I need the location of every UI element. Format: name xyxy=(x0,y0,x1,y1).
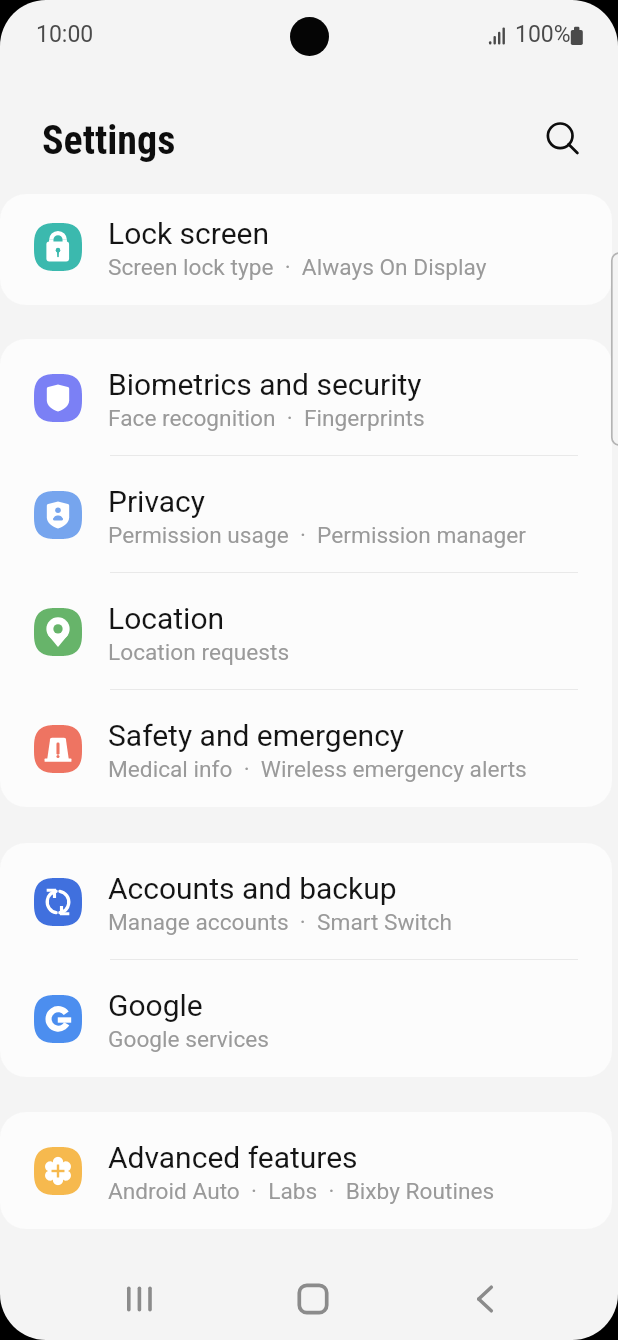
staticText: 10:00 xyxy=(36,21,94,48)
staticText: Manage accounts · Smart Switch xyxy=(108,909,452,936)
button[interactable]: Accounts and backup xyxy=(0,843,612,960)
staticText: Accounts and backup xyxy=(108,871,397,906)
button[interactable]: Google xyxy=(0,960,612,1077)
staticText: Privacy xyxy=(108,484,205,519)
button[interactable]: Biometrics and security xyxy=(0,339,612,456)
staticText: Lock screen xyxy=(108,216,270,251)
staticText: Face recognition · Fingerprints xyxy=(108,405,425,432)
button[interactable]: Safety and emergency xyxy=(0,690,612,807)
staticText: Advanced features xyxy=(108,1140,358,1175)
staticText: Google services xyxy=(108,1026,269,1053)
staticText: Google xyxy=(108,988,203,1023)
button[interactable]: Recent apps xyxy=(104,1264,174,1334)
button[interactable]: Search xyxy=(530,106,590,166)
staticText: Android Auto · Labs · Bixby Routines xyxy=(108,1178,495,1205)
staticText: Biometrics and security xyxy=(108,367,422,402)
staticText: 100% xyxy=(515,21,571,48)
staticText: Permission usage · Permission manager xyxy=(108,522,526,549)
staticText: Medical info · Wireless emergency alerts xyxy=(108,756,527,783)
button[interactable]: Privacy xyxy=(0,456,612,573)
staticText: Screen lock type · Always On Display xyxy=(108,254,487,281)
button[interactable]: Back xyxy=(450,1264,520,1334)
staticText: Safety and emergency xyxy=(108,718,405,753)
staticText: Settings xyxy=(42,117,176,164)
button[interactable]: Home xyxy=(278,1264,348,1334)
staticText: Location requests xyxy=(108,639,290,666)
button[interactable]: Location xyxy=(0,573,612,690)
button[interactable]: Lock screen xyxy=(0,194,612,299)
staticText: Location xyxy=(108,601,225,636)
button[interactable]: Advanced features xyxy=(0,1112,612,1229)
